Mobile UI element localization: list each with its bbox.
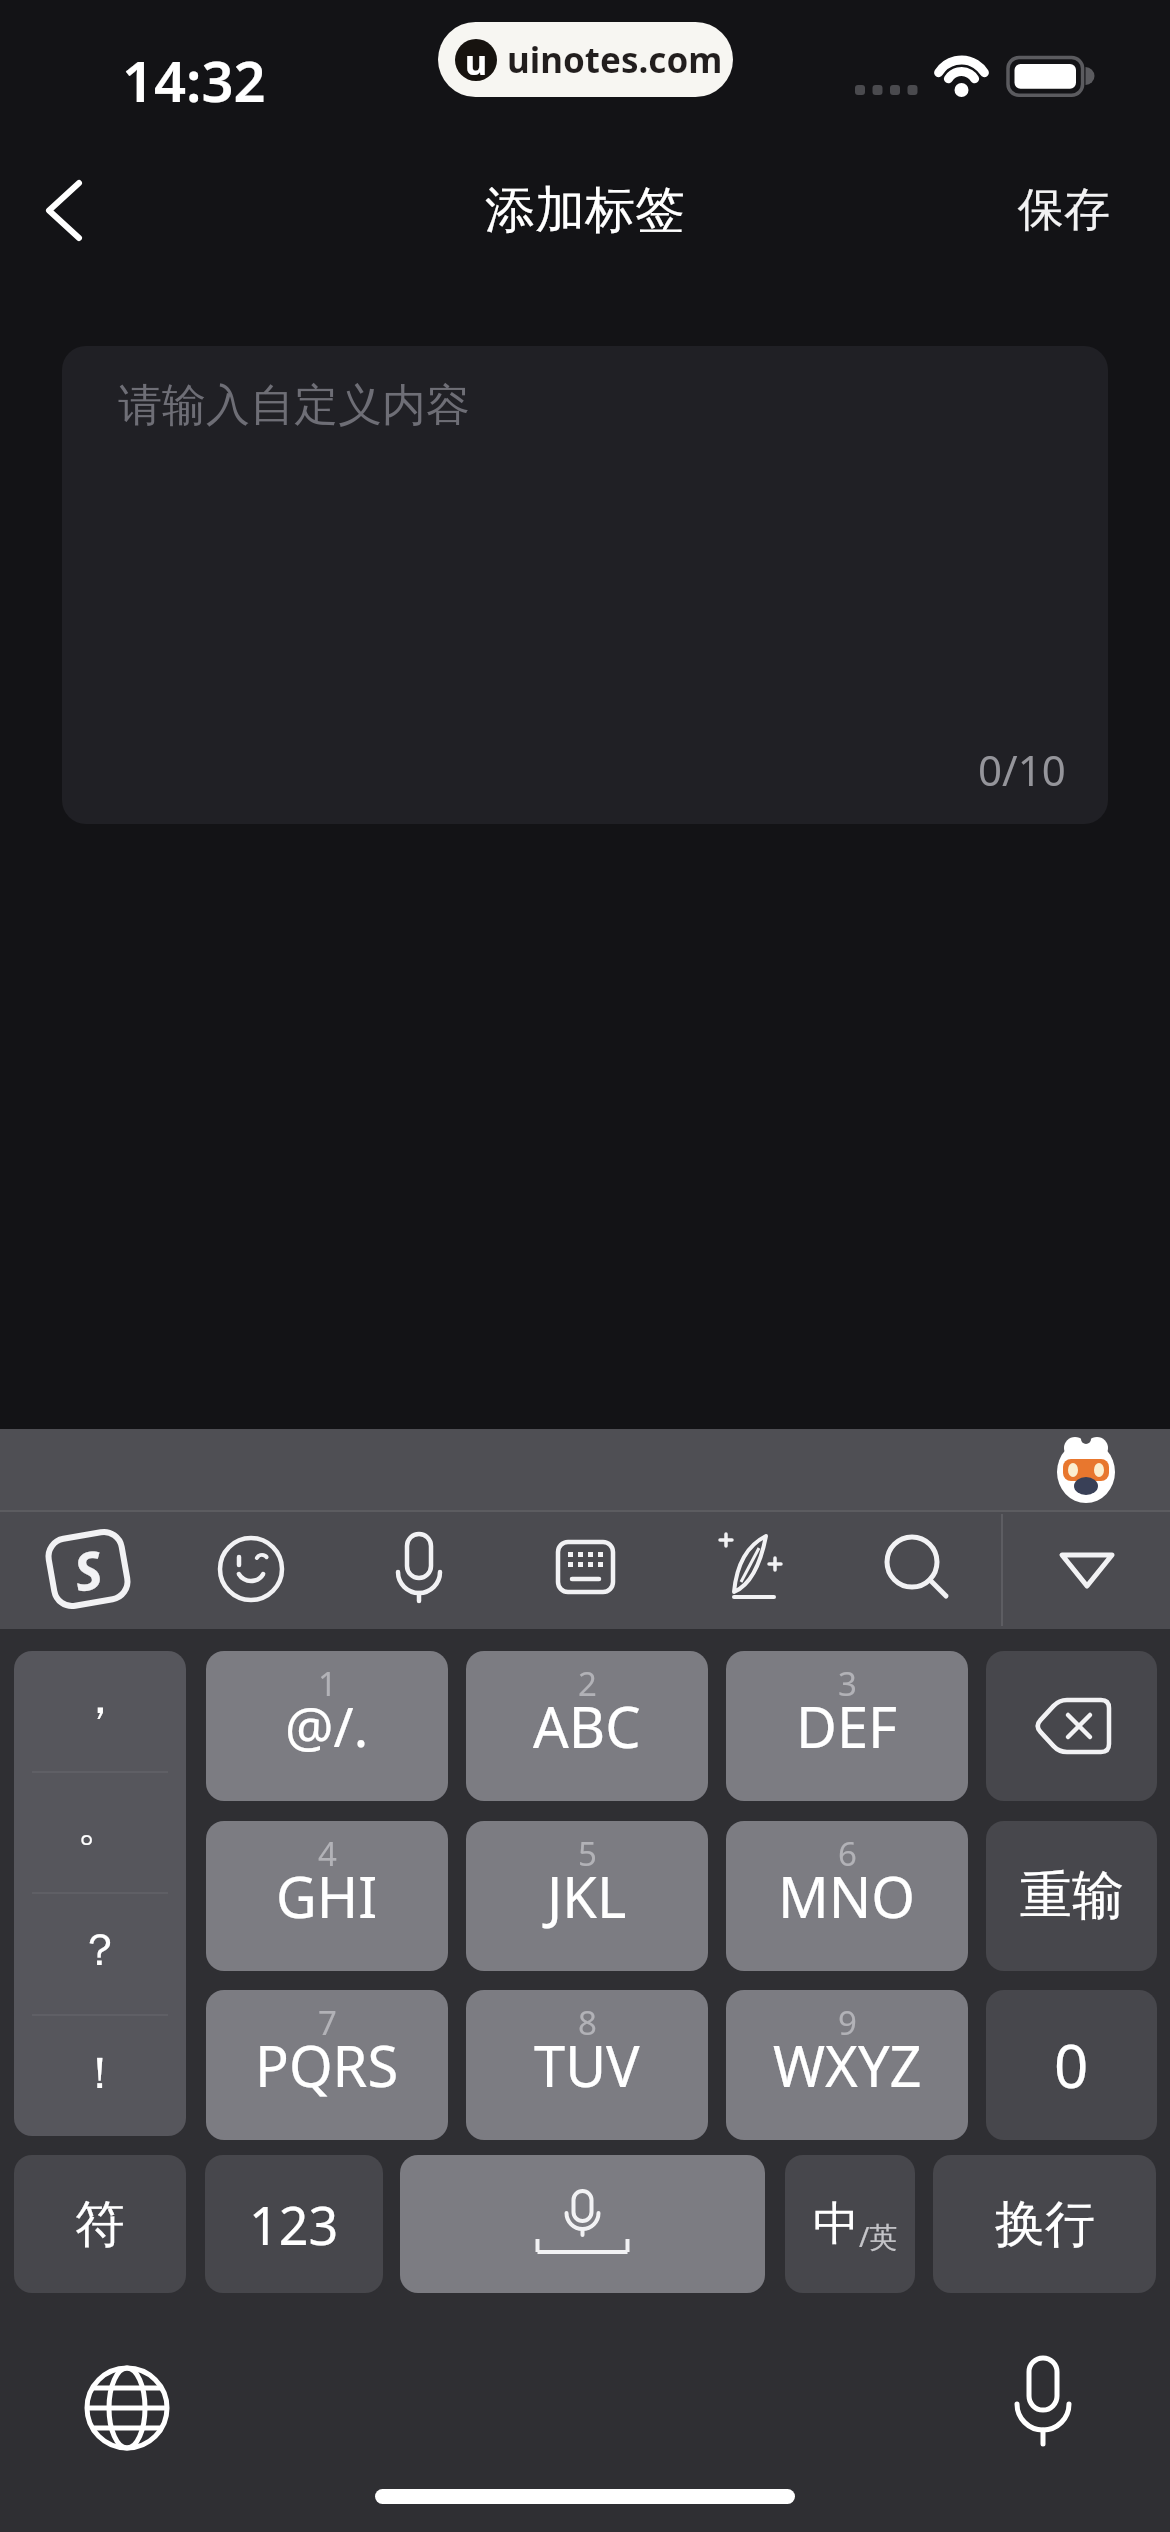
- button[interactable]: [400, 2155, 765, 2293]
- button[interactable]: [712, 1530, 792, 1606]
- button[interactable]: [986, 1651, 1157, 1801]
- staticText: 1: [318, 1661, 337, 1706]
- button[interactable]: 请输入自定义内容: [62, 346, 1108, 824]
- button[interactable]: 7: [206, 1990, 448, 2140]
- button[interactable]: [394, 1532, 444, 1604]
- staticText: 3: [838, 1661, 857, 1706]
- button[interactable]: [1052, 1546, 1122, 1596]
- staticText: MNO: [778, 1858, 916, 1934]
- button[interactable]: 换行: [933, 2155, 1156, 2293]
- button[interactable]: [217, 1535, 285, 1603]
- button[interactable]: 8: [466, 1990, 708, 2140]
- staticText: 2: [578, 1661, 597, 1706]
- button[interactable]: [556, 1540, 616, 1596]
- button[interactable]: S: [40, 1521, 135, 1616]
- button[interactable]: 6: [726, 1821, 968, 1971]
- button[interactable]: 符: [14, 2155, 186, 2293]
- staticText: DEF: [796, 1688, 898, 1764]
- staticText: TUV: [534, 2027, 640, 2103]
- staticText: 换行: [995, 2193, 1095, 2256]
- button[interactable]: 1: [206, 1651, 448, 1801]
- staticText: 4: [318, 1831, 337, 1876]
- button[interactable]: 2: [466, 1651, 708, 1801]
- button[interactable]: u: [438, 22, 733, 97]
- staticText: 0: [1054, 2024, 1089, 2106]
- staticText: 7: [318, 2000, 337, 2045]
- staticText: JKL: [547, 1858, 627, 1934]
- staticText: ！: [78, 2046, 122, 2101]
- button[interactable]: 123: [205, 2155, 383, 2293]
- staticText: PQRS: [255, 2027, 399, 2103]
- button[interactable]: 5: [466, 1821, 708, 1971]
- button[interactable]: [1008, 2354, 1078, 2454]
- staticText: WXYZ: [773, 2027, 922, 2103]
- staticText: 请输入自定义内容: [118, 378, 470, 433]
- button[interactable]: [20, 165, 110, 255]
- staticText: 6: [838, 1831, 857, 1876]
- staticText: 重输: [1020, 1863, 1124, 1929]
- staticText: uinotes.com: [507, 36, 723, 84]
- staticText: 添加标签: [485, 179, 685, 242]
- staticText: 中: [813, 2195, 859, 2253]
- button[interactable]: ，: [14, 1651, 186, 2136]
- staticText: 5: [578, 1831, 597, 1876]
- button[interactable]: [83, 2364, 171, 2452]
- staticText: 。: [77, 1796, 123, 1854]
- button[interactable]: 重输: [986, 1821, 1157, 1971]
- staticText: /英: [859, 2217, 898, 2255]
- staticText: 8: [578, 2000, 597, 2045]
- button[interactable]: 保存: [984, 160, 1144, 260]
- staticText: @/.: [285, 1689, 369, 1763]
- button[interactable]: 0: [986, 1990, 1157, 2140]
- staticText: 123: [249, 2189, 339, 2260]
- staticText: u: [465, 39, 488, 81]
- staticText: 0/10: [978, 741, 1066, 798]
- button[interactable]: 4: [206, 1821, 448, 1971]
- staticText: 符: [75, 2193, 125, 2256]
- staticText: S: [68, 1532, 108, 1607]
- staticText: ，: [77, 1669, 123, 1727]
- button[interactable]: 9: [726, 1990, 968, 2140]
- staticText: 保存: [1018, 181, 1110, 239]
- button[interactable]: 中: [785, 2155, 915, 2293]
- button[interactable]: [884, 1534, 952, 1602]
- staticText: ABC: [533, 1688, 641, 1764]
- staticText: ？: [78, 1923, 122, 1978]
- button[interactable]: 3: [726, 1651, 968, 1801]
- staticText: 14:32: [122, 42, 266, 118]
- staticText: 9: [838, 2000, 857, 2045]
- staticText: GHI: [276, 1858, 378, 1934]
